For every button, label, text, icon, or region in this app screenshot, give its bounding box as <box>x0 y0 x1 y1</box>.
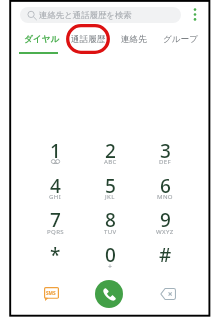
staticText: グループ <box>163 34 198 45</box>
button[interactable]: 0 <box>84 242 136 272</box>
button[interactable]: 通話履歴 <box>65 27 111 52</box>
staticText: GHI <box>49 192 62 200</box>
button[interactable]: Call <box>95 280 123 308</box>
staticText: JKL <box>105 192 115 200</box>
staticText: 2 <box>105 138 116 164</box>
button[interactable]: 8 <box>84 207 136 237</box>
staticText: # <box>159 242 172 268</box>
button[interactable]: 5 <box>84 173 136 203</box>
staticText: 連絡先と通話履歴を検索 <box>39 10 132 21</box>
staticText: 6 <box>160 173 171 199</box>
staticText: TUV <box>104 227 117 235</box>
button[interactable]: 連絡先と通話履歴を検索 <box>20 7 181 23</box>
staticText: ダイヤル <box>24 34 60 45</box>
button[interactable]: 3 <box>139 138 191 168</box>
staticText: PQRS <box>47 227 64 235</box>
button[interactable]: 1 <box>29 138 81 168</box>
staticText: 8 <box>105 207 116 233</box>
staticText: 連絡先 <box>121 34 147 45</box>
button[interactable]: 6 <box>139 173 191 203</box>
button[interactable]: ダイヤル <box>19 27 65 52</box>
button[interactable]: 2 <box>84 138 136 168</box>
button[interactable]: Send SMS <box>33 278 69 310</box>
staticText: MNO <box>157 192 173 200</box>
staticText: SMS <box>46 290 56 296</box>
button[interactable]: Backspace <box>150 278 186 310</box>
staticText: 1 <box>50 138 61 164</box>
staticText: 5 <box>105 173 116 199</box>
staticText: ABC <box>104 157 117 165</box>
staticText: 0 <box>105 242 116 268</box>
staticText: 9 <box>160 207 171 233</box>
staticText: WXYZ <box>156 227 174 235</box>
button[interactable]: # <box>139 242 191 272</box>
staticText: * <box>50 242 61 268</box>
button[interactable]: グループ <box>157 27 203 52</box>
staticText: DEF <box>159 157 172 165</box>
staticText: 7 <box>50 207 61 233</box>
staticText: + <box>108 262 113 270</box>
staticText: 通話履歴 <box>71 34 106 45</box>
button[interactable]: 連絡先 <box>111 27 157 52</box>
staticText: 4 <box>50 173 61 199</box>
button[interactable]: 7 <box>29 207 81 237</box>
staticText: 3 <box>160 138 171 164</box>
button[interactable]: More options <box>186 6 203 23</box>
button[interactable]: * <box>29 242 81 272</box>
button[interactable]: 9 <box>139 207 191 237</box>
button[interactable]: 4 <box>29 173 81 203</box>
